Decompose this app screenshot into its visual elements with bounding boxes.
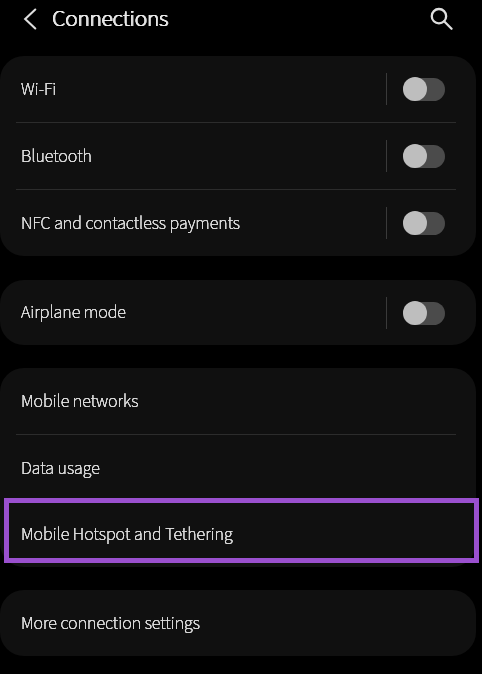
staticText: NFC and contactless payments (21, 211, 241, 236)
staticText: NFC and contactless payments (21, 211, 241, 236)
staticText: Data usage (21, 456, 100, 481)
button[interactable]: Toggle Wi-Fi (403, 74, 445, 104)
button[interactable]: NFC and contactless payments (0, 190, 476, 256)
button[interactable]: Toggle NFC and contactless payments (403, 208, 445, 238)
button[interactable]: Bluetooth (0, 123, 476, 189)
staticText: Data usage (21, 456, 100, 481)
button[interactable]: Search (423, 1, 457, 35)
staticText: Connections (53, 2, 169, 35)
staticText: Mobile networks (21, 389, 139, 414)
button[interactable]: Toggle Airplane mode (403, 298, 445, 328)
button[interactable]: Data usage (0, 435, 476, 501)
button[interactable]: Airplane mode (0, 280, 476, 345)
button[interactable]: Mobile Hotspot and Tethering (0, 501, 476, 567)
staticText: Wi-Fi (21, 77, 57, 102)
staticText: More connection settings (21, 611, 200, 636)
staticText: Mobile networks (21, 389, 139, 414)
button[interactable]: Mobile networks (0, 368, 476, 434)
staticText: More connection settings (21, 611, 200, 636)
staticText: Mobile Hotspot and Tethering (21, 522, 233, 547)
button[interactable]: More connection settings (0, 590, 476, 656)
staticText: Connections (52, 2, 168, 35)
staticText: Connections (52, 2, 168, 35)
staticText: Bluetooth (21, 144, 92, 169)
button[interactable]: Toggle Bluetooth (403, 141, 445, 171)
staticText: Airplane mode (21, 300, 126, 325)
staticText: Mobile Hotspot and Tethering (21, 522, 233, 547)
button[interactable]: Wi-Fi (0, 56, 476, 122)
staticText: Bluetooth (21, 144, 92, 169)
button[interactable]: Navigate up (13, 2, 47, 36)
staticText: Wi-Fi (21, 77, 57, 102)
staticText: Airplane mode (21, 300, 126, 325)
